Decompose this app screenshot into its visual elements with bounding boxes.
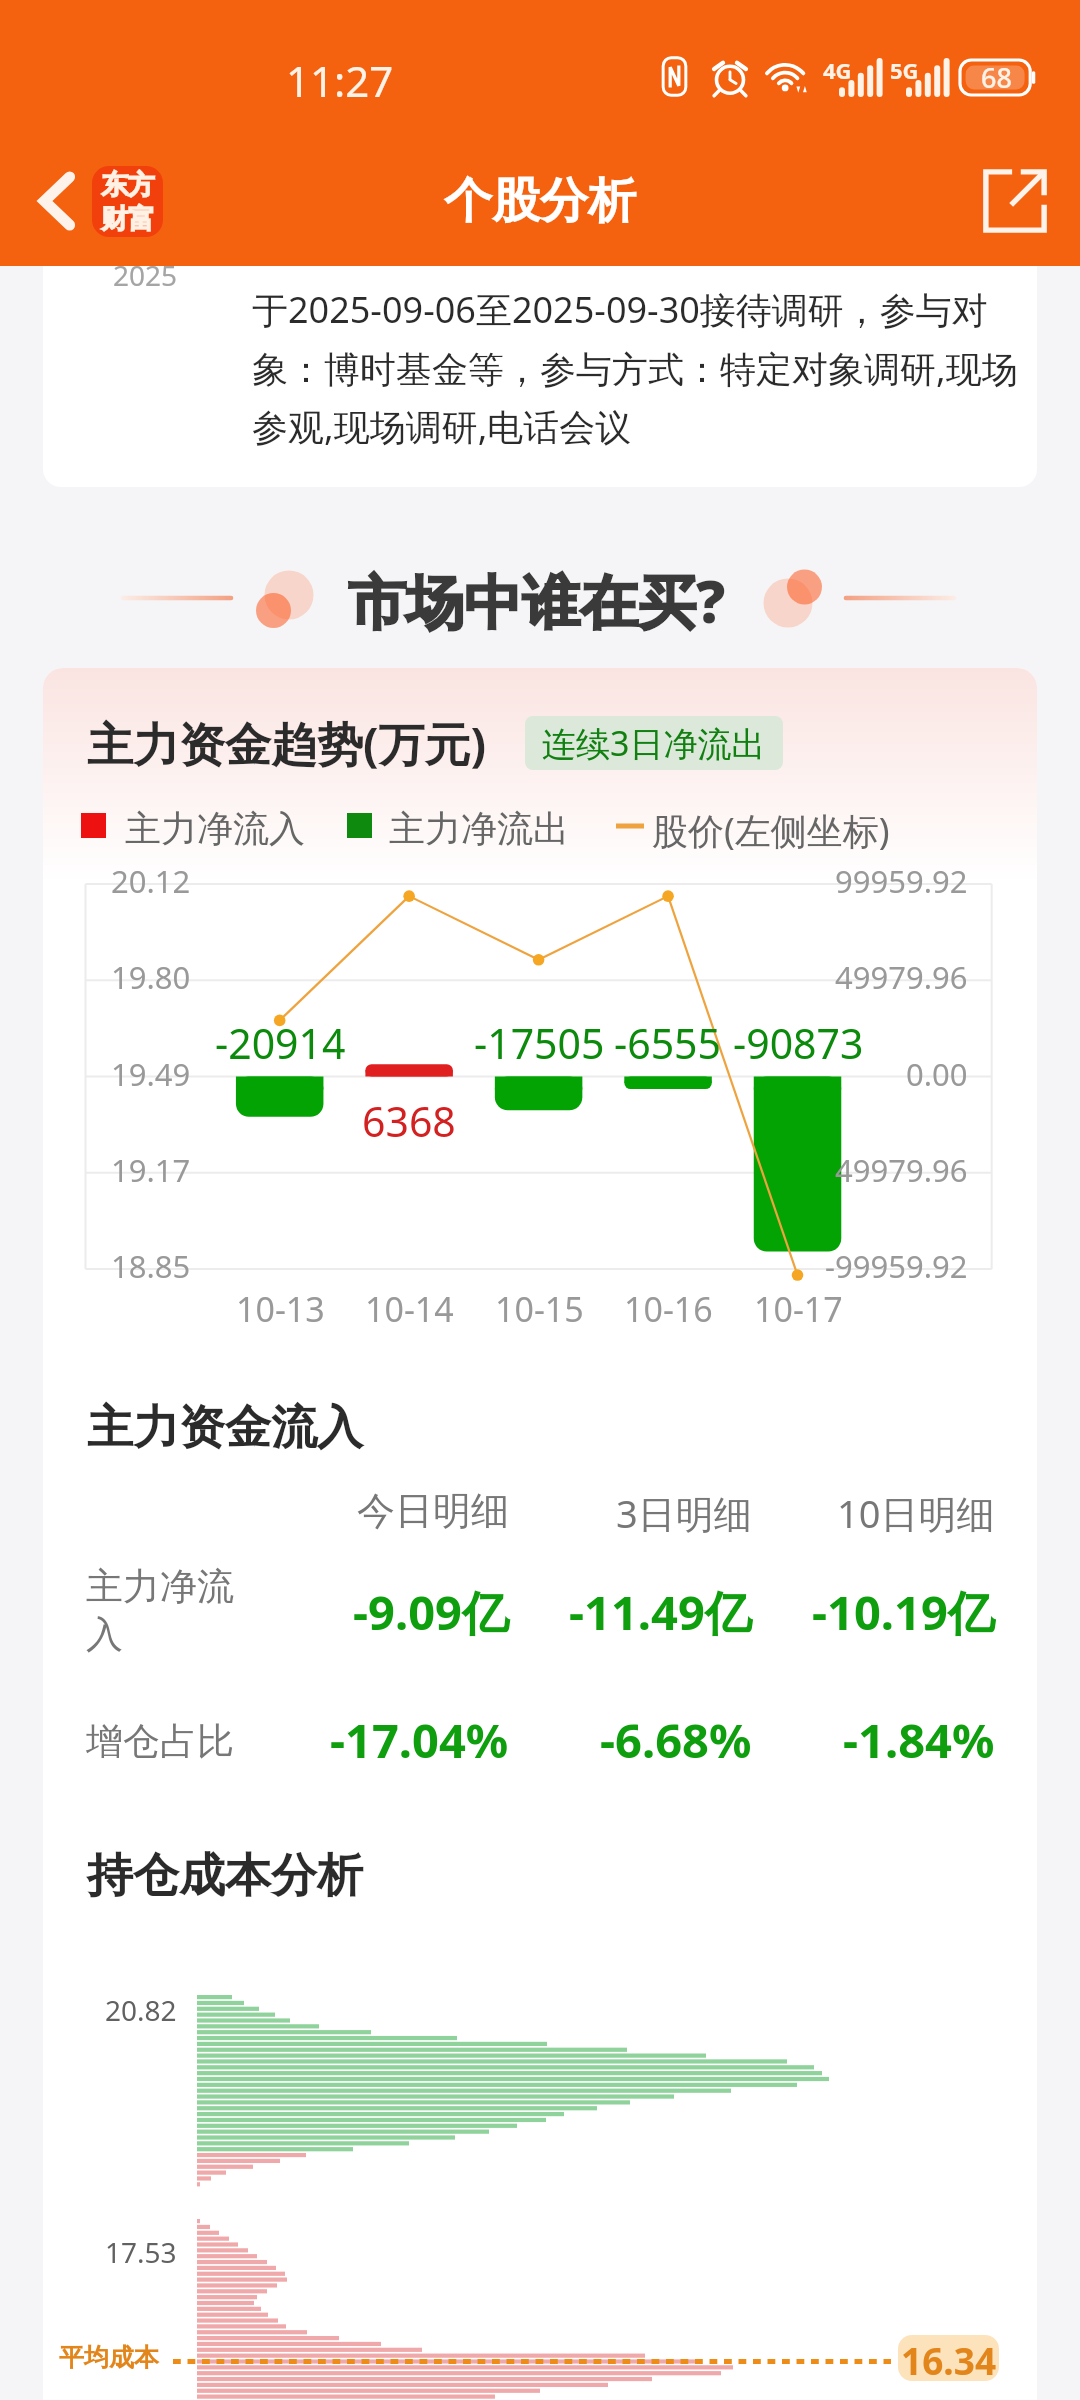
staticText: 2025 — [113, 266, 178, 294]
staticText: 平均成本 — [59, 2342, 159, 2373]
staticText: 99959.92 — [835, 860, 968, 902]
staticText: 主力净流出 — [389, 806, 569, 851]
button[interactable]: 16.34 — [898, 2335, 999, 2381]
staticText: 0.00 — [906, 1053, 968, 1095]
button[interactable]: 2025 — [43, 266, 1037, 487]
staticText: 10-16 — [624, 1286, 713, 1332]
staticText: -6555 — [614, 1015, 722, 1071]
staticText: 持仓成本分析 — [87, 1847, 363, 1905]
staticText: 10-13 — [236, 1286, 325, 1332]
staticText: 4G — [823, 55, 852, 85]
staticText: 增仓占比 — [86, 1718, 234, 1765]
staticText: 3日明细 — [616, 1487, 752, 1539]
staticText: -17505 — [474, 1015, 605, 1071]
staticText: 6368 — [362, 1093, 456, 1149]
staticText: 5G — [890, 55, 919, 85]
staticText: -99959.92 — [825, 1245, 968, 1287]
staticText: 19.80 — [111, 956, 191, 998]
staticText: 10-17 — [754, 1286, 843, 1332]
staticText: 19.49 — [111, 1053, 191, 1095]
button[interactable]: East Money — [92, 166, 163, 237]
button[interactable]: 连续3日净流出 — [542, 720, 766, 766]
staticText: 于2025-09-06至2025-09-30接待调研，参与对象：博时基金等，参与… — [252, 285, 1022, 451]
button[interactable]: Back — [18, 163, 94, 239]
staticText: 主力资金流入 — [87, 1399, 363, 1457]
staticText: 49979.96 — [835, 1149, 968, 1191]
staticText: 49979.96 — [835, 956, 968, 998]
staticText: 财富 — [101, 202, 155, 236]
button[interactable]: Share — [976, 162, 1054, 240]
staticText: 10日明细 — [837, 1487, 995, 1539]
staticText: -6.68% — [600, 1708, 752, 1772]
staticText: 68 — [981, 59, 1012, 96]
staticText: 主力资金趋势(万元) — [87, 712, 487, 775]
staticText: 主力净流入 — [125, 806, 305, 851]
staticText: 股价(左侧坐标) — [652, 806, 890, 855]
staticText: 19.17 — [111, 1149, 191, 1191]
staticText: 今日明细 — [357, 1487, 509, 1535]
staticText: 连续3日净流出 — [542, 720, 766, 766]
staticText: 10-15 — [495, 1286, 584, 1332]
staticText: 10-14 — [365, 1286, 454, 1332]
staticText: 东方 — [101, 168, 155, 202]
staticText: 16.34 — [901, 2335, 997, 2381]
staticText: -20914 — [215, 1015, 346, 1071]
staticText: 个股分析 — [444, 171, 636, 231]
staticText: 11:27 — [286, 52, 394, 109]
staticText: -17.04% — [330, 1708, 509, 1772]
staticText: -1.84% — [843, 1708, 995, 1772]
staticText: -10.19亿 — [812, 1580, 995, 1644]
staticText: 20.82 — [105, 1991, 177, 2029]
staticText: 17.53 — [105, 2233, 177, 2271]
staticText: 主力净流 入 — [86, 1563, 234, 1658]
staticText: 18.85 — [111, 1245, 191, 1287]
staticText: -90873 — [733, 1015, 864, 1071]
staticText: 20.12 — [111, 860, 191, 902]
staticText: -9.09亿 — [353, 1580, 509, 1644]
staticText: 市场中谁在买? — [348, 561, 726, 640]
staticText: -11.49亿 — [569, 1580, 752, 1644]
